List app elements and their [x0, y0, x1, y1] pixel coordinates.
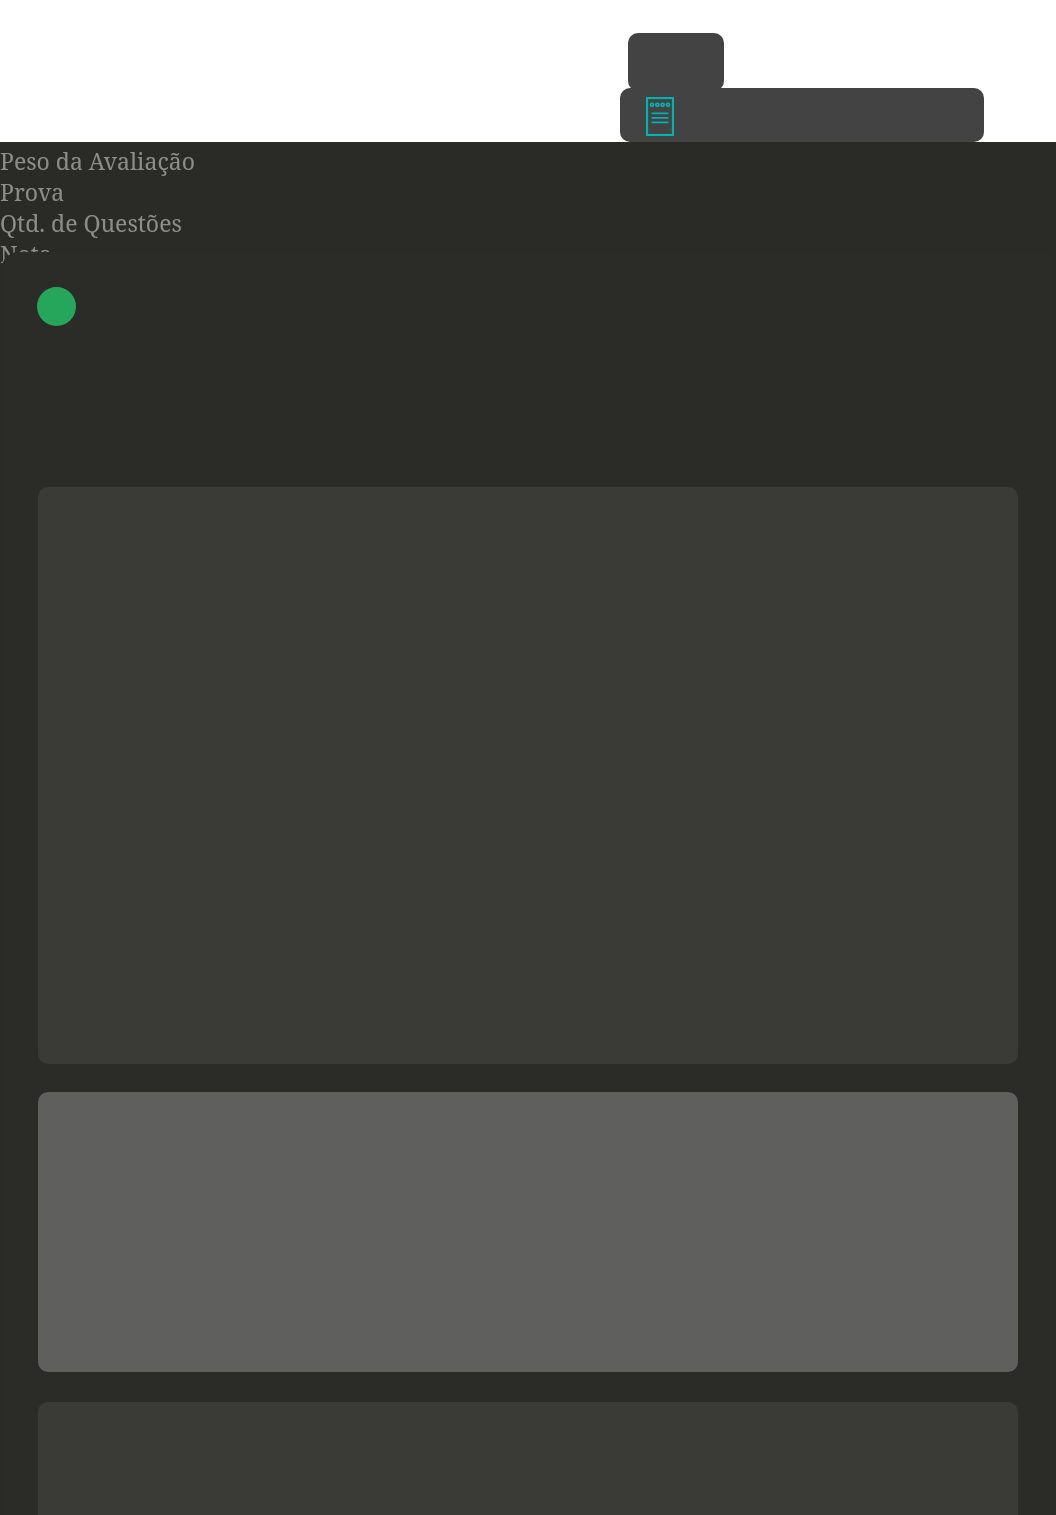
button[interactable]: Status — [37, 287, 76, 326]
staticText: Nota — [0, 238, 52, 269]
button[interactable]: Peso da Avaliação — [0, 145, 195, 269]
staticText: Peso da Avaliação — [0, 145, 195, 176]
staticText: Qtd. de Questões — [0, 207, 182, 238]
staticText: Prova — [0, 176, 65, 207]
button[interactable]: Notes — [646, 97, 674, 136]
button[interactable]: Tab — [628, 33, 724, 91]
button[interactable]: Notes — [620, 88, 984, 142]
